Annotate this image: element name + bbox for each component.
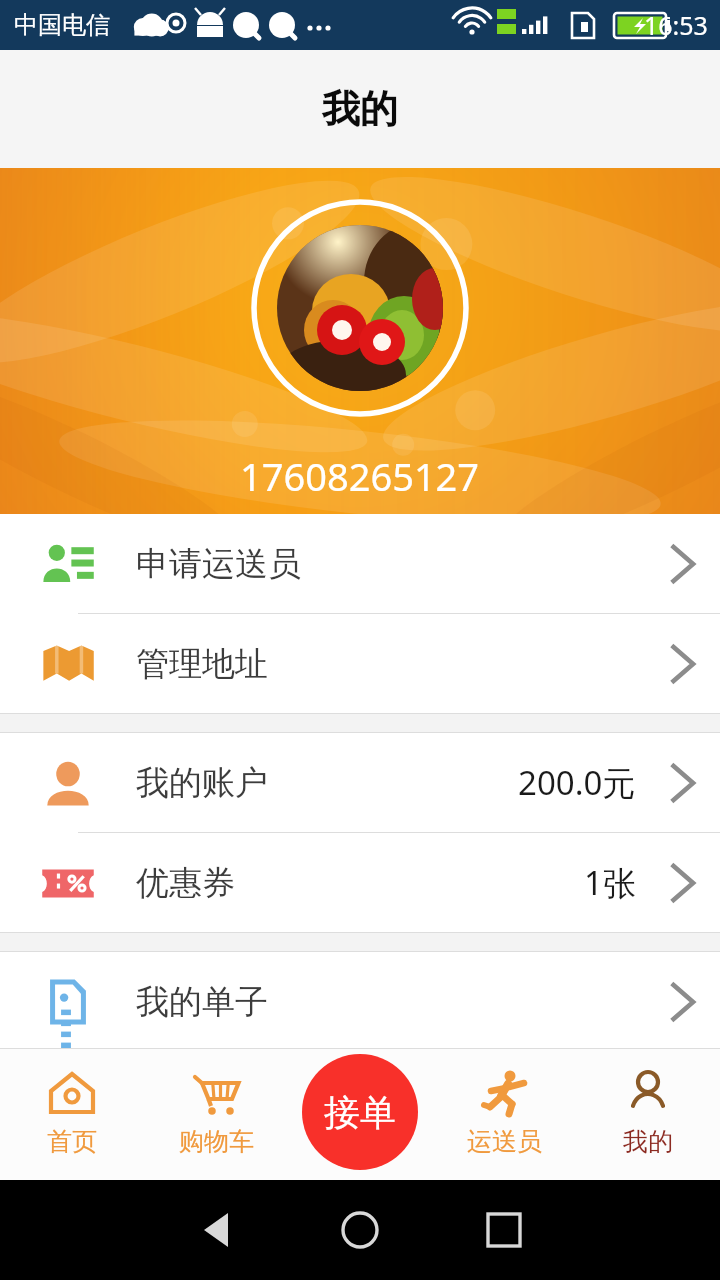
button[interactable]: 接单 [302,1054,418,1170]
staticText: 17608265127 [240,450,480,502]
staticText: 我的 [623,1126,673,1157]
staticText: 运送员 [467,1126,542,1157]
staticText: 我的账户 [136,762,268,804]
button[interactable]: 优惠券 [0,833,720,932]
staticText: 接单 [324,1090,396,1135]
staticText: 申请运送员 [136,543,301,585]
staticText: 首页 [47,1126,97,1157]
button[interactable]: 申请运送员 [0,514,720,613]
button[interactable]: 我的单子 [0,952,720,1051]
button[interactable]: 首页 [0,1048,144,1180]
staticText: 优惠券 [136,862,235,904]
staticText: 1张 [584,860,636,905]
button[interactable]: 我的 [576,1048,720,1180]
staticText: 购物车 [179,1126,254,1157]
staticText: 200.0元 [518,760,636,805]
button[interactable]: 购物车 [144,1048,288,1180]
button[interactable]: 管理地址 [0,614,720,713]
button[interactable]: 运送员 [432,1048,576,1180]
button[interactable]: 我的账户 [0,733,720,832]
staticText: 中国电信 [14,10,110,40]
staticText: 16:53 [644,8,708,42]
staticText: 我的 [322,85,398,133]
staticText: 管理地址 [136,643,268,685]
staticText: 我的单子 [136,981,268,1023]
